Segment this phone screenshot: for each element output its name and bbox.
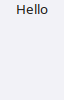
staticText: Hello: [16, 0, 48, 18]
